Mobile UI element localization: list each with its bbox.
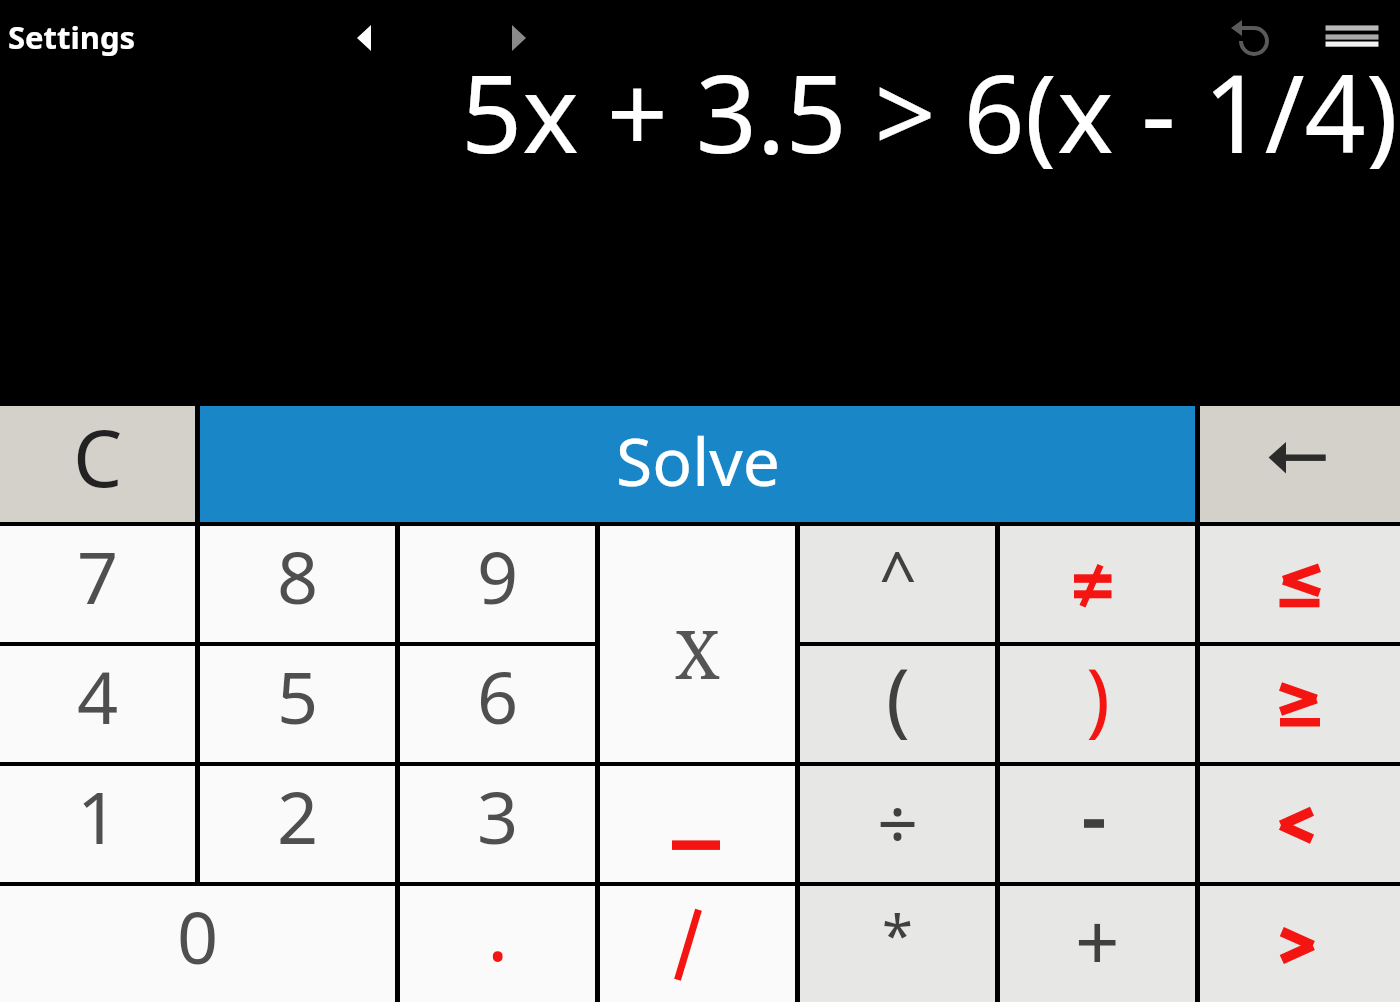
button[interactable]: [1200, 646, 1400, 762]
button[interactable]: Solve: [200, 406, 1195, 522]
staticText: 1: [77, 767, 119, 865]
staticText: 7: [77, 527, 119, 625]
button[interactable]: X: [600, 526, 795, 762]
button[interactable]: [600, 886, 795, 1002]
button[interactable]: 5: [200, 646, 395, 762]
button[interactable]: [600, 766, 795, 882]
button[interactable]: +: [1000, 886, 1195, 1002]
staticText: 6: [477, 647, 519, 745]
button[interactable]: 9: [400, 526, 595, 642]
button[interactable]: 3: [400, 766, 595, 882]
button[interactable]: [1200, 886, 1400, 1002]
button[interactable]: 0: [0, 886, 395, 1002]
button[interactable]: 2: [200, 766, 395, 882]
staticText: 0: [177, 887, 219, 985]
staticText: X: [675, 606, 720, 699]
button[interactable]: [350, 18, 380, 58]
button[interactable]: [1200, 406, 1400, 522]
staticText: 5: [277, 647, 319, 745]
staticText: ^: [879, 529, 917, 619]
button[interactable]: [1200, 526, 1400, 642]
button[interactable]: C: [0, 406, 195, 522]
button[interactable]: 6: [400, 646, 595, 762]
button[interactable]: [1320, 18, 1384, 54]
staticText: C: [73, 404, 123, 510]
button[interactable]: ): [1000, 646, 1195, 762]
button[interactable]: ^: [800, 526, 995, 642]
button[interactable]: .: [400, 886, 595, 1002]
staticText: (: [886, 641, 910, 750]
button[interactable]: *: [800, 886, 995, 1002]
button[interactable]: 1: [0, 766, 195, 882]
button[interactable]: [1000, 526, 1195, 642]
button[interactable]: [505, 18, 535, 58]
button[interactable]: 4: [0, 646, 195, 762]
button[interactable]: [1228, 14, 1276, 60]
staticText: 9: [477, 527, 519, 625]
staticText: ): [1086, 641, 1110, 750]
staticText: ÷: [877, 773, 919, 871]
button[interactable]: (: [800, 646, 995, 762]
button[interactable]: [1000, 766, 1195, 882]
staticText: 4: [77, 647, 119, 745]
staticText: .: [487, 875, 509, 984]
staticText: +: [1075, 888, 1120, 994]
staticText: 5x + 3.5 > 6(x - 1/4): [461, 39, 1398, 169]
button[interactable]: 7: [0, 526, 195, 642]
button[interactable]: Settings: [8, 16, 136, 58]
button[interactable]: 8: [200, 526, 395, 642]
button[interactable]: [1200, 766, 1400, 882]
staticText: 3: [477, 767, 519, 865]
staticText: 8: [277, 527, 319, 625]
staticText: Solve: [616, 415, 780, 505]
button[interactable]: ÷: [800, 766, 995, 882]
staticText: 2: [277, 767, 319, 865]
staticText: *: [882, 896, 913, 972]
